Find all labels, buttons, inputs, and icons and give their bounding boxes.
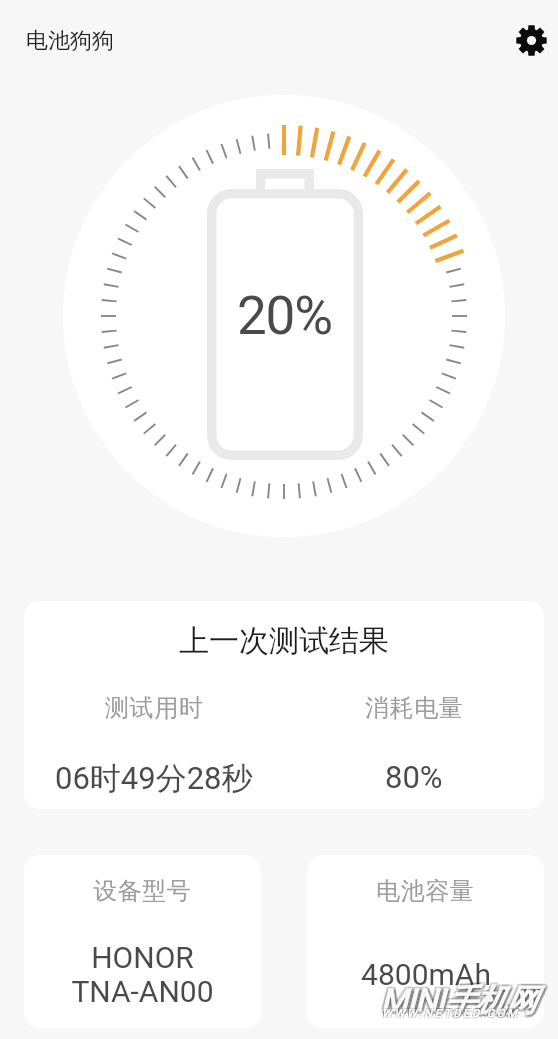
staticText: 消耗电量 (365, 693, 464, 723)
staticText: WWW.NETDED.COM (381, 1006, 519, 1019)
staticText: 设备型号 (93, 876, 192, 906)
staticText: MINI手机网 (383, 979, 538, 1018)
staticText: 20% (237, 285, 332, 347)
staticText: 上一次测试结果 (24, 622, 544, 660)
staticText: MINI手机网 (381, 981, 536, 1020)
button[interactable]: Settings (506, 14, 556, 64)
staticText: 80% (385, 759, 443, 795)
staticText: 测试用时 (105, 693, 204, 723)
staticText: 06时49分28秒 (55, 759, 253, 798)
staticText: MINI手机网 (384, 981, 539, 1020)
button[interactable]: 上一次测试结果 (24, 601, 544, 809)
staticText: MINI手机网 (379, 983, 534, 1022)
staticText: WWW.NETDED.COM (382, 1007, 520, 1020)
staticText: 4800mAh (361, 957, 491, 992)
staticText: WWW.NETDED.COM (383, 1006, 521, 1019)
button[interactable]: 电池狗狗 (13, 15, 127, 63)
staticText: HONOR TNA-AN00 (71, 940, 214, 1009)
button[interactable]: 电池容量 (307, 855, 544, 1028)
staticText: MINI手机网 (379, 979, 534, 1018)
button[interactable]: 设备型号 (24, 855, 261, 1028)
staticText: MINI手机网 (383, 983, 538, 1022)
staticText: MINI手机网 (381, 984, 536, 1023)
staticText: WWW.NETDED.COM (381, 1008, 519, 1021)
staticText: WWW.NETDED.COM (383, 1008, 521, 1021)
staticText: 电池容量 (376, 876, 475, 906)
staticText: 电池狗狗 (26, 27, 114, 55)
